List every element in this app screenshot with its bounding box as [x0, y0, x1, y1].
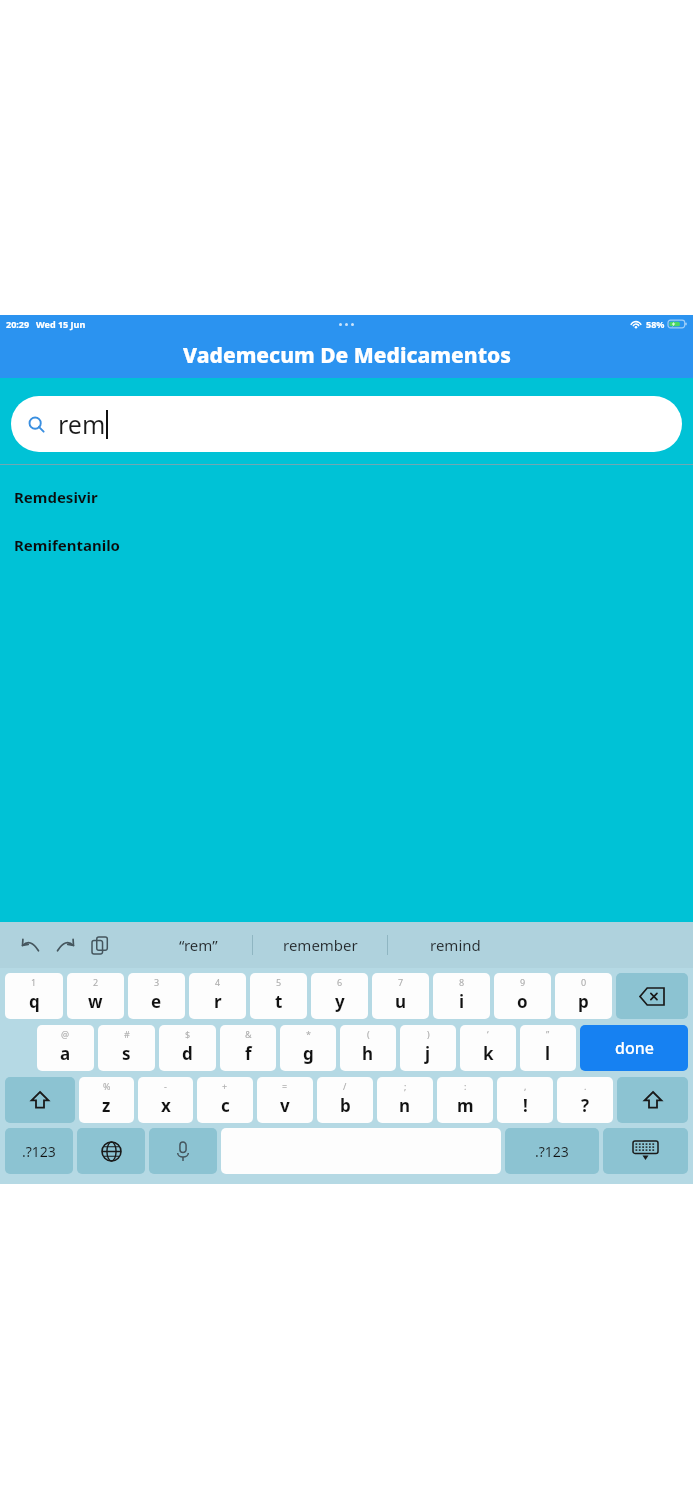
staticText: o: [517, 990, 528, 1013]
button[interactable]: rem: [11, 396, 682, 452]
staticText: 5: [276, 976, 282, 988]
staticText: .?123: [535, 1142, 569, 1161]
staticText: y: [335, 990, 345, 1013]
staticText: k: [483, 1042, 494, 1065]
button[interactable]: Change language: [77, 1128, 145, 1174]
staticText: v: [280, 1094, 290, 1117]
button[interactable]: 8: [433, 973, 490, 1019]
staticText: 9: [520, 976, 526, 988]
staticText: e: [151, 990, 162, 1013]
staticText: =: [282, 1080, 288, 1092]
staticText: Vademecum De Medicamentos: [183, 341, 511, 370]
staticText: #: [124, 1028, 130, 1040]
staticText: .: [584, 1080, 587, 1092]
button[interactable]: *: [280, 1025, 336, 1071]
staticText: Wed 15 Jun: [36, 318, 86, 330]
button[interactable]: ‘: [460, 1025, 516, 1071]
button[interactable]: .?123: [5, 1128, 73, 1174]
button[interactable]: 7: [372, 973, 429, 1019]
button[interactable]: Dictate: [149, 1128, 217, 1174]
button[interactable]: 1: [5, 973, 63, 1019]
button[interactable]: ,: [497, 1077, 553, 1123]
button[interactable]: ): [400, 1025, 456, 1071]
staticText: *: [306, 1028, 311, 1040]
staticText: remember: [283, 935, 358, 955]
staticText: done: [615, 1037, 654, 1059]
staticText: 2: [93, 976, 99, 988]
staticText: !: [523, 1094, 528, 1117]
staticText: j: [425, 1042, 431, 1065]
button[interactable]: Undo: [14, 929, 46, 961]
staticText: s: [122, 1042, 131, 1065]
staticText: ”: [546, 1028, 550, 1040]
staticText: f: [245, 1042, 252, 1065]
staticText: 1: [31, 976, 37, 988]
staticText: /: [343, 1080, 347, 1092]
button[interactable]: 5: [250, 973, 307, 1019]
staticText: (: [367, 1028, 370, 1040]
staticText: “rem”: [179, 935, 218, 955]
button[interactable]: :: [437, 1077, 493, 1123]
staticText: q: [29, 990, 40, 1013]
staticText: t: [275, 990, 283, 1013]
button[interactable]: 9: [494, 973, 551, 1019]
staticText: ,: [524, 1080, 527, 1092]
button[interactable]: .: [557, 1077, 613, 1123]
button[interactable]: -: [138, 1077, 193, 1123]
staticText: &: [245, 1028, 252, 1040]
button[interactable]: 4: [189, 973, 246, 1019]
button[interactable]: Hide keyboard: [603, 1128, 688, 1174]
staticText: 3: [154, 976, 160, 988]
staticText: p: [578, 990, 589, 1013]
button[interactable]: Backspace: [616, 973, 688, 1019]
staticText: 6: [337, 976, 343, 988]
staticText: %: [103, 1080, 111, 1092]
button[interactable]: ”: [520, 1025, 576, 1071]
button[interactable]: remind: [388, 922, 522, 968]
button[interactable]: Remdesivir: [0, 487, 693, 505]
button[interactable]: “rem”: [144, 922, 252, 968]
button[interactable]: 2: [67, 973, 124, 1019]
button[interactable]: 6: [311, 973, 368, 1019]
button[interactable]: 0: [555, 973, 612, 1019]
staticText: b: [340, 1094, 351, 1117]
button[interactable]: =: [257, 1077, 313, 1123]
staticText: 7: [398, 976, 404, 988]
staticText: ?: [581, 1094, 590, 1117]
staticText: $: [185, 1028, 191, 1040]
staticText: u: [395, 990, 407, 1013]
button[interactable]: &: [220, 1025, 276, 1071]
staticText: z: [102, 1094, 111, 1117]
staticText: rem: [58, 407, 106, 441]
staticText: h: [362, 1042, 374, 1065]
button[interactable]: ;: [377, 1077, 433, 1123]
button[interactable]: Shift: [5, 1077, 75, 1123]
staticText: +: [222, 1080, 228, 1092]
button[interactable]: Redo: [49, 929, 81, 961]
button[interactable]: /: [317, 1077, 373, 1123]
button[interactable]: $: [159, 1025, 216, 1071]
staticText: g: [303, 1042, 314, 1065]
button[interactable]: Shift: [617, 1077, 688, 1123]
staticText: 0: [581, 976, 587, 988]
button[interactable]: %: [79, 1077, 134, 1123]
staticText: 58%: [646, 318, 665, 330]
button[interactable]: 3: [128, 973, 185, 1019]
staticText: :: [464, 1080, 467, 1092]
staticText: Remifentanilo: [14, 535, 120, 553]
staticText: x: [161, 1094, 171, 1117]
button[interactable]: Paste: [84, 929, 116, 961]
button[interactable]: done: [580, 1025, 688, 1071]
staticText: @: [61, 1028, 70, 1040]
button[interactable]: @: [37, 1025, 94, 1071]
button[interactable]: remember: [253, 922, 387, 968]
button[interactable]: #: [98, 1025, 155, 1071]
staticText: ;: [404, 1080, 407, 1092]
staticText: ‘: [487, 1028, 489, 1040]
staticText: i: [459, 990, 465, 1013]
button[interactable]: (: [340, 1025, 396, 1071]
button[interactable]: .?123: [505, 1128, 599, 1174]
button[interactable]: +: [197, 1077, 253, 1123]
button[interactable]: Remifentanilo: [0, 535, 693, 553]
